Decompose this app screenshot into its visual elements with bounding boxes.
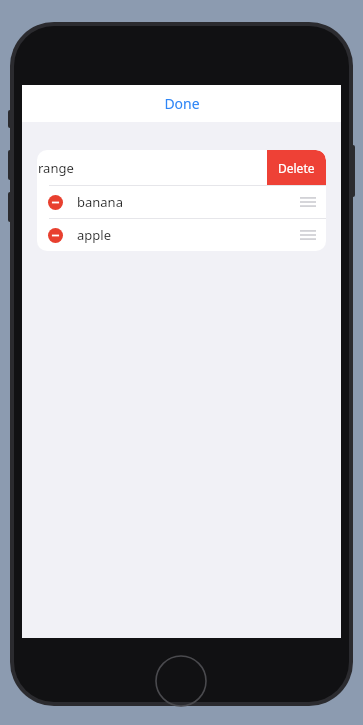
- staticText: banana: [77, 193, 123, 211]
- staticText: Done: [164, 94, 200, 113]
- button[interactable]: Reorder: [300, 160, 316, 176]
- staticText: Delete: [278, 160, 315, 176]
- button[interactable]: Done: [150, 88, 214, 119]
- button[interactable]: Remove banana: [48, 195, 63, 210]
- button[interactable]: Delete: [267, 150, 326, 185]
- button[interactable]: Home: [155, 655, 207, 707]
- button[interactable]: Reorder: [300, 194, 316, 210]
- button[interactable]: Remove banana: [37, 186, 326, 218]
- button[interactable]: range: [37, 150, 326, 185]
- button[interactable]: Reorder: [300, 227, 316, 243]
- button[interactable]: Remove apple: [48, 228, 63, 243]
- staticText: apple: [77, 226, 111, 244]
- staticText: range: [38, 159, 74, 177]
- button[interactable]: Remove apple: [37, 219, 326, 251]
